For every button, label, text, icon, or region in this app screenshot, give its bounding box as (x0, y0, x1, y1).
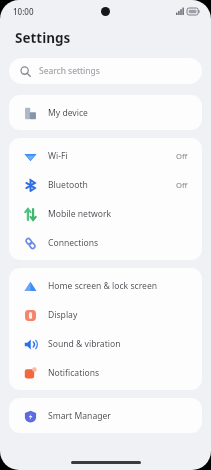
staticText: Notifications (48, 367, 100, 379)
button[interactable]: Wi-Fi (9, 141, 202, 170)
staticText: Search settings (39, 65, 100, 77)
staticText: Settings (15, 29, 71, 47)
button[interactable]: Search settings (9, 58, 202, 84)
button[interactable]: Bluetooth (9, 170, 202, 199)
button[interactable]: Display (9, 300, 202, 329)
staticText: Off (176, 180, 188, 190)
button[interactable]: Sound & vibration (9, 329, 202, 358)
staticText: Off (176, 151, 188, 161)
button[interactable]: My device (9, 98, 202, 127)
button[interactable]: Smart Manager (9, 401, 202, 430)
staticText: Sound & vibration (48, 338, 121, 350)
staticText: Wi-Fi (48, 150, 68, 162)
button[interactable]: Notifications (9, 358, 202, 387)
staticText: Connections (48, 237, 99, 249)
staticText: Mobile network (48, 208, 112, 220)
staticText: 10:00 (13, 6, 34, 17)
staticText: Bluetooth (48, 179, 88, 191)
staticText: Display (48, 309, 78, 321)
button[interactable]: Connections (9, 228, 202, 257)
staticText: My device (48, 107, 88, 119)
staticText: Smart Manager (48, 410, 111, 422)
button[interactable]: Mobile network (9, 199, 202, 228)
button[interactable]: Home screen & lock screen (9, 271, 202, 300)
staticText: Home screen & lock screen (48, 280, 158, 292)
other: My device (24, 107, 37, 120)
